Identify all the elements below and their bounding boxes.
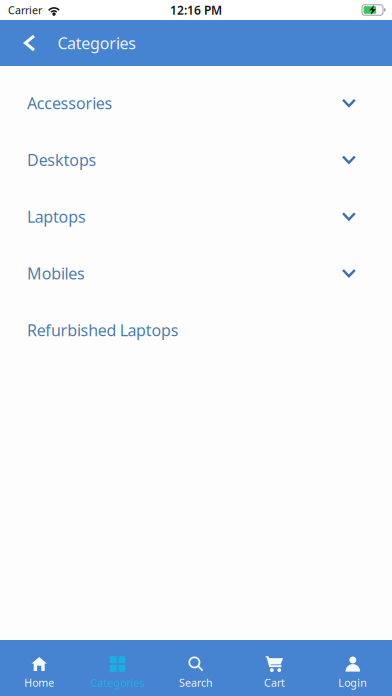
- staticText: Search: [179, 675, 213, 690]
- staticText: Desktops: [27, 149, 97, 170]
- staticText: Mobiles: [27, 263, 85, 284]
- staticText: Carrier: [8, 3, 42, 17]
- staticText: Laptops: [27, 206, 86, 227]
- staticText: Accessories: [27, 92, 112, 114]
- button[interactable]: Mobiles: [0, 245, 392, 302]
- button[interactable]: Categories: [78, 640, 157, 696]
- button[interactable]: Laptops: [0, 188, 392, 245]
- staticText: Categories: [57, 32, 136, 54]
- button[interactable]: Accessories: [0, 75, 392, 131]
- button[interactable]: Desktops: [0, 131, 392, 188]
- button[interactable]: Cart: [235, 640, 314, 696]
- button[interactable]: Login: [314, 640, 392, 696]
- button[interactable]: Back: [0, 20, 57, 66]
- staticText: Categories: [91, 675, 145, 690]
- staticText: 12:16 PM: [170, 2, 222, 18]
- staticText: Refurbished Laptops: [27, 319, 179, 341]
- staticText: Cart: [264, 675, 285, 690]
- staticText: Home: [24, 675, 54, 690]
- staticText: Login: [338, 675, 367, 690]
- button[interactable]: Search: [157, 640, 235, 696]
- button[interactable]: Refurbished Laptops: [0, 302, 392, 358]
- button[interactable]: Home: [0, 640, 78, 696]
